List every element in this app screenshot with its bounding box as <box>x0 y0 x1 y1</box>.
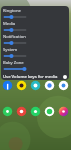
button[interactable]: App <box>58 106 69 117</box>
button[interactable]: App <box>58 80 69 91</box>
staticText: Ringtone <box>3 8 21 14</box>
button[interactable]: Notification <box>3 34 69 47</box>
button[interactable]: App <box>30 80 41 91</box>
button[interactable]: App <box>2 80 13 91</box>
staticText: Baby Zone <box>3 60 24 66</box>
button[interactable]: Baby Zone <box>3 60 69 73</box>
button[interactable]: App <box>44 80 55 91</box>
button[interactable]: Use Volume keys for media <box>3 74 67 80</box>
staticText: Use Volume keys for media <box>3 74 58 80</box>
staticText: System <box>3 47 18 53</box>
button[interactable]: System <box>3 47 69 60</box>
staticText: Notification <box>3 34 26 40</box>
staticText: Media <box>3 21 16 27</box>
button[interactable]: App <box>30 106 41 117</box>
button[interactable]: App <box>16 80 27 91</box>
button[interactable]: App <box>44 106 55 117</box>
button[interactable]: Ringtone <box>3 8 69 21</box>
button[interactable]: App <box>2 106 13 117</box>
button[interactable]: Media <box>3 21 69 34</box>
button[interactable]: App <box>16 106 27 117</box>
